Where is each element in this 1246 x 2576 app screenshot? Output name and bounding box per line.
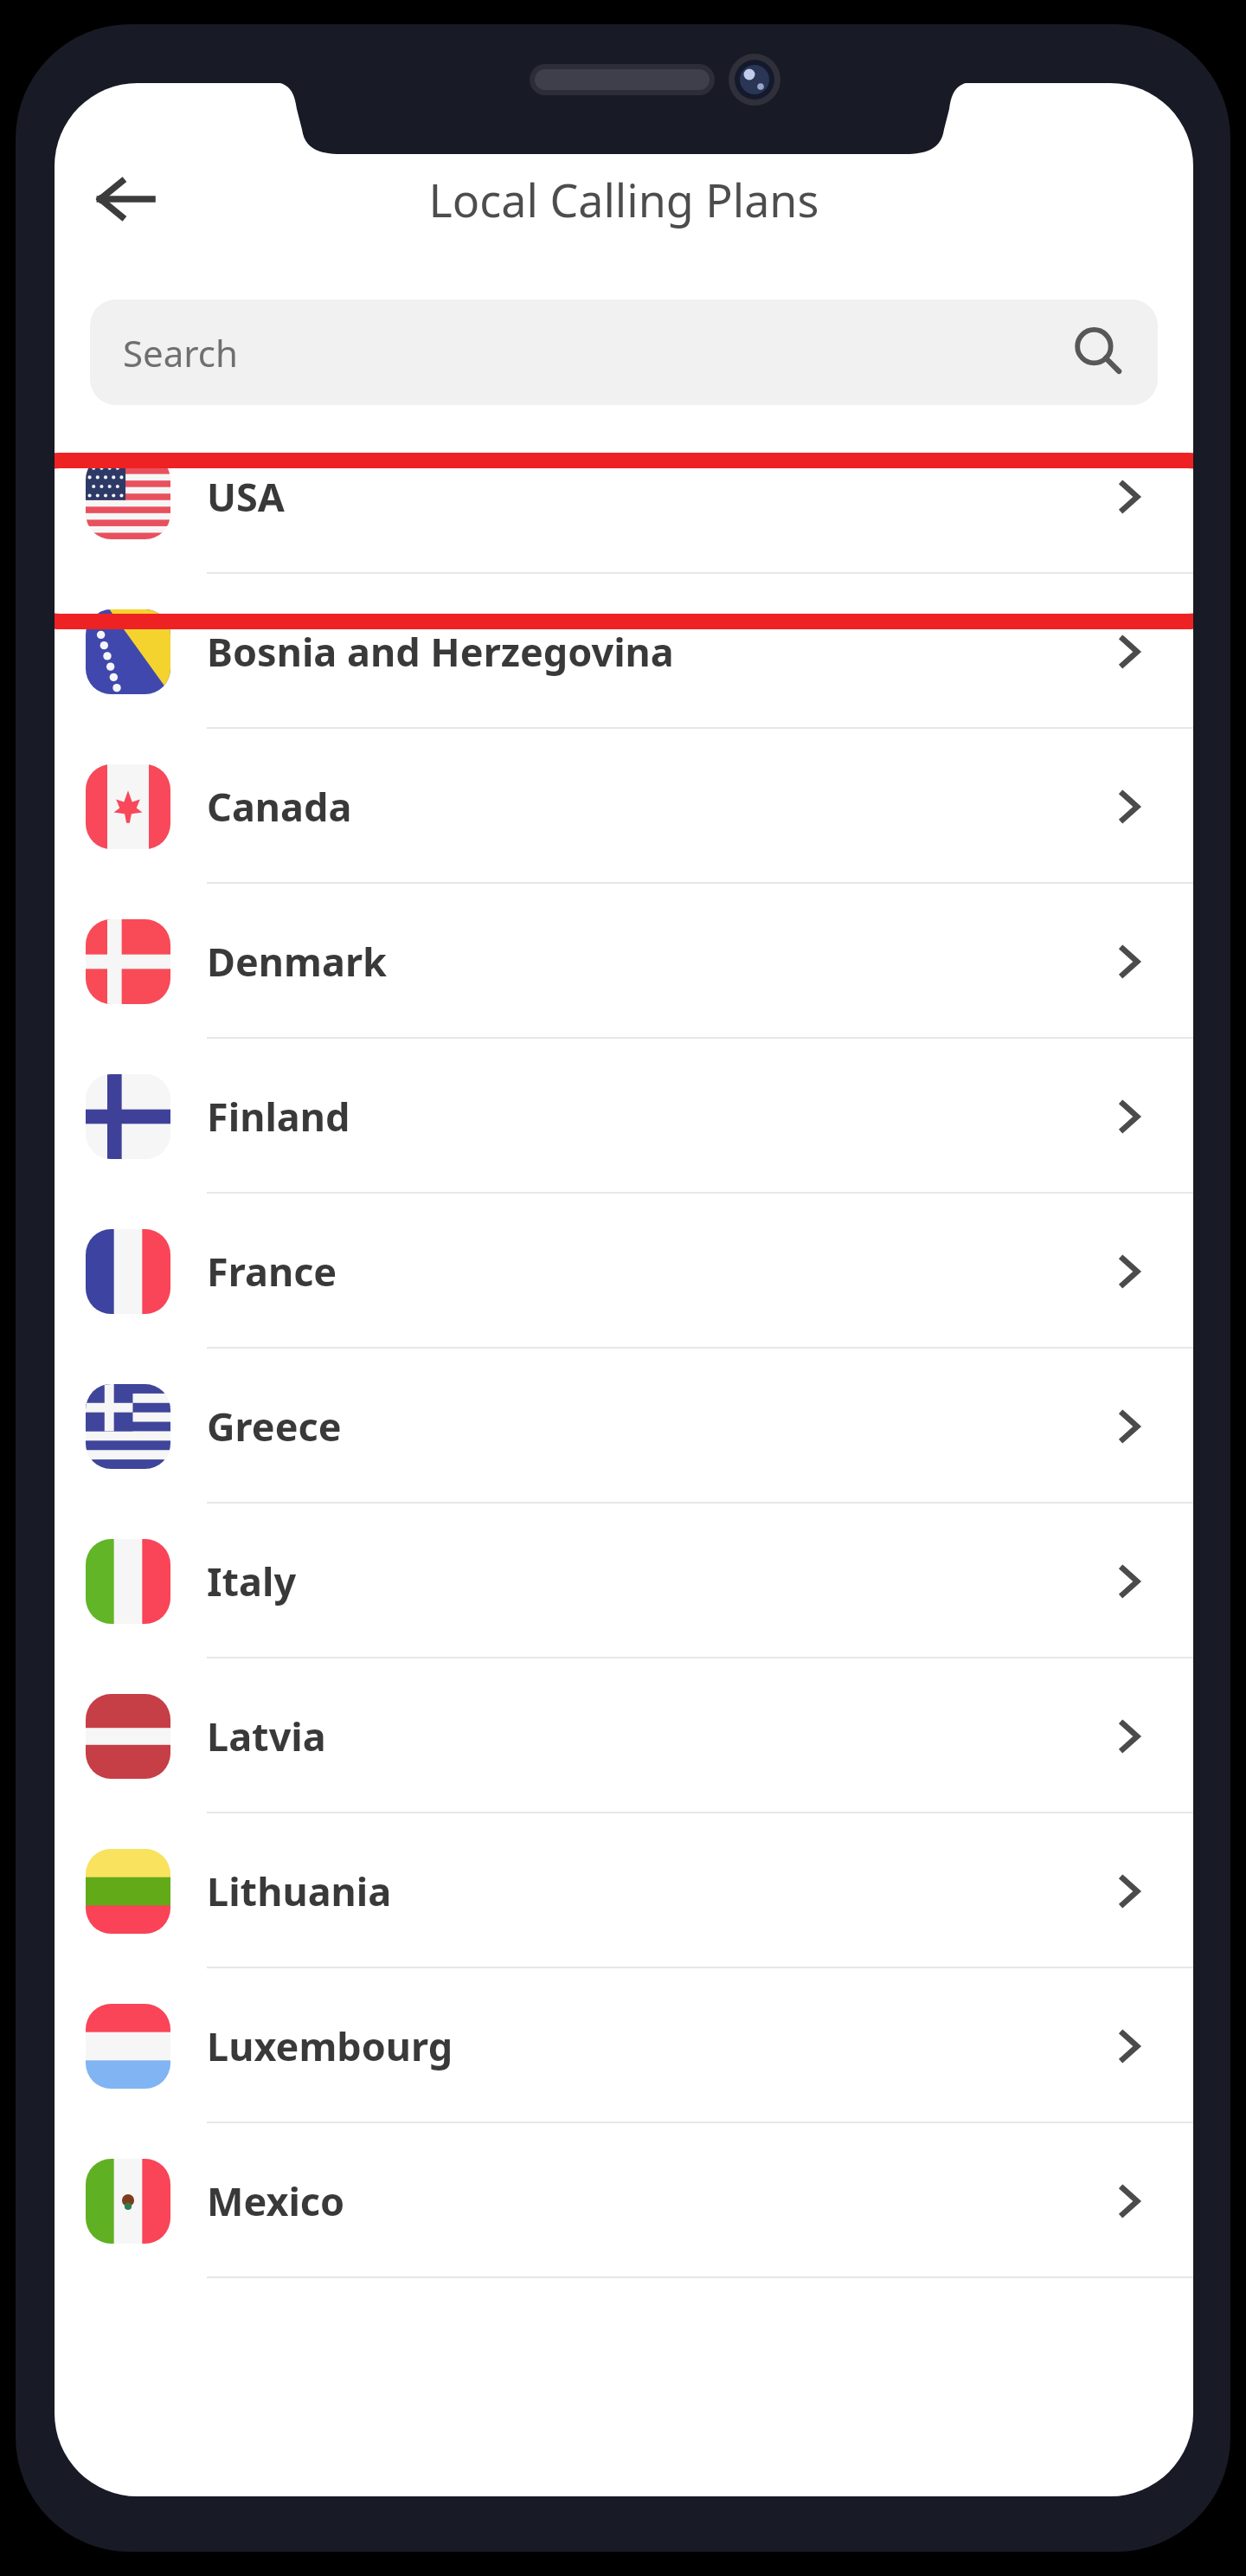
staticText: Mexico [207, 2174, 1100, 2227]
button[interactable]: Bosnia and Herzegovina [55, 574, 1193, 729]
staticText: Bosnia and Herzegovina [207, 625, 1100, 678]
staticText: Denmark [207, 935, 1100, 988]
button[interactable]: Canada [55, 729, 1193, 884]
button[interactable]: France [55, 1194, 1193, 1349]
staticText: France [207, 1245, 1100, 1298]
button[interactable]: Mexico [55, 2123, 1193, 2278]
button[interactable]: Greece [55, 1349, 1193, 1504]
staticText: Italy [207, 1555, 1100, 1607]
staticText: Luxembourg [207, 2019, 1100, 2072]
button[interactable]: Denmark [55, 884, 1193, 1039]
button[interactable]: USA [55, 419, 1193, 574]
staticText: USA [207, 470, 1100, 523]
staticText: Finland [207, 1090, 1100, 1143]
button[interactable]: Latvia [55, 1658, 1193, 1813]
staticText: Greece [207, 1400, 1100, 1452]
staticText: Latvia [207, 1710, 1100, 1762]
button[interactable]: Search [90, 299, 1158, 405]
button[interactable]: Finland [55, 1039, 1193, 1194]
staticText: Lithuania [207, 1864, 1100, 1917]
staticText: Local Calling Plans [55, 169, 1193, 230]
staticText: Search [123, 328, 238, 377]
button[interactable]: Italy [55, 1504, 1193, 1658]
button[interactable]: Luxembourg [55, 1968, 1193, 2123]
button[interactable]: Back [74, 147, 177, 251]
staticText: Canada [207, 780, 1100, 833]
button[interactable]: Lithuania [55, 1813, 1193, 1968]
